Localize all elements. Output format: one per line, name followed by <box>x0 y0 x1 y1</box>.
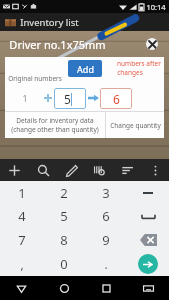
button[interactable]: 0 <box>43 252 85 276</box>
staticText: 0 <box>60 255 68 273</box>
button[interactable]: 9 <box>85 228 127 252</box>
button[interactable]: 4 <box>0 204 43 228</box>
staticText: , <box>20 256 24 272</box>
staticText: Driver no.1x75mm <box>9 37 106 52</box>
staticText: 5 <box>64 91 71 107</box>
button[interactable]: Scan <box>85 159 113 181</box>
staticText: numbers after <box>117 59 161 68</box>
staticText: Change quantity <box>110 121 161 130</box>
staticText: Original numbers <box>8 74 62 83</box>
button[interactable]: Minus <box>127 181 169 204</box>
button[interactable]: Add <box>0 159 29 181</box>
button[interactable]: Enter <box>127 252 169 276</box>
button[interactable]: 2 <box>43 181 85 204</box>
staticText: 3 <box>102 184 110 202</box>
button[interactable]: Search <box>29 159 57 181</box>
button[interactable]: , <box>0 252 43 276</box>
button[interactable]: Back <box>0 276 43 300</box>
staticText: 1 <box>22 92 28 104</box>
button[interactable]: 6 <box>85 204 127 228</box>
staticText: 5 <box>60 207 68 225</box>
staticText: 8 <box>60 231 68 249</box>
staticText: 9 <box>102 231 110 249</box>
button[interactable]: Edit <box>57 159 85 181</box>
staticText: Inventory list <box>20 16 79 29</box>
staticText: Details for inventory data <box>16 116 94 125</box>
button[interactable]: Details for inventory data <box>5 112 105 138</box>
button[interactable]: Space <box>127 204 169 228</box>
button[interactable]: Delete <box>127 228 169 252</box>
staticText: (change other than quantity) <box>11 125 99 134</box>
button[interactable]: 5 <box>43 204 85 228</box>
staticText: . <box>104 256 108 272</box>
staticText: 2 <box>60 184 68 202</box>
button[interactable]: More <box>141 159 169 181</box>
staticText: 6 <box>113 91 120 107</box>
button[interactable]: Sort <box>113 159 141 181</box>
button[interactable]: 1 <box>0 181 43 204</box>
button[interactable]: 3 <box>85 181 127 204</box>
button[interactable]: . <box>85 252 127 276</box>
button[interactable]: 7 <box>0 228 43 252</box>
staticText: 6 <box>102 207 110 225</box>
button[interactable]: 8 <box>43 228 85 252</box>
button[interactable]: 5 <box>54 88 86 109</box>
button[interactable]: Home <box>43 276 85 300</box>
staticText: 7 <box>18 231 26 249</box>
button[interactable]: Keyboard <box>127 276 169 300</box>
button[interactable]: Recents <box>85 276 127 300</box>
staticText: 10:14 <box>146 2 166 12</box>
button[interactable]: Close <box>146 38 158 50</box>
staticText: 1 <box>18 184 26 202</box>
staticText: Add <box>77 63 94 75</box>
staticText: 4 <box>18 207 26 225</box>
button[interactable]: Add <box>68 60 102 77</box>
button[interactable]: Change quantity <box>106 112 164 138</box>
staticText: changes <box>117 68 143 77</box>
